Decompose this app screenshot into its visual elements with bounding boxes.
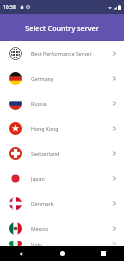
button[interactable]: Recent apps xyxy=(83,246,124,261)
button[interactable]: Best Performance Server xyxy=(0,41,124,66)
button[interactable]: Japan xyxy=(0,166,124,191)
button[interactable]: Back xyxy=(0,246,42,261)
button[interactable]: Denmark xyxy=(0,191,124,216)
button[interactable]: Italy xyxy=(0,241,124,246)
button[interactable]: Mexico xyxy=(0,216,124,241)
staticText: 10:58 xyxy=(3,4,16,11)
button[interactable]: Russia xyxy=(0,91,124,116)
staticText: Japan xyxy=(31,175,110,182)
staticText: Italy xyxy=(31,241,110,246)
staticText: Denmark xyxy=(31,200,110,207)
staticText: Germany xyxy=(31,75,110,82)
staticText: Russia xyxy=(31,100,110,107)
button[interactable]: Switzerland xyxy=(0,141,124,166)
button[interactable]: Germany xyxy=(0,66,124,91)
button[interactable]: Hong Kong xyxy=(0,116,124,141)
staticText: Select Country server xyxy=(25,23,99,33)
staticText: Best Performance Server xyxy=(31,50,110,57)
button[interactable]: Home xyxy=(42,246,83,261)
staticText: Hong Kong xyxy=(31,125,110,132)
staticText: Switzerland xyxy=(31,150,110,157)
staticText: Mexico xyxy=(31,225,110,232)
